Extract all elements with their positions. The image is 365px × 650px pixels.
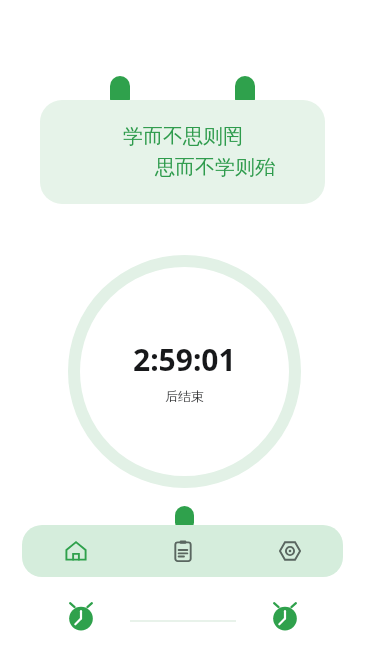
staticText: 思而不学则殆 xyxy=(155,155,275,180)
button[interactable]: Settings xyxy=(236,525,343,577)
staticText: 2:59:01 xyxy=(133,339,236,380)
button[interactable]: Alarm xyxy=(269,600,301,632)
button[interactable]: Tasks xyxy=(129,525,236,577)
staticText: 学而不思则罔 xyxy=(123,124,243,149)
button[interactable]: Alarm xyxy=(65,600,97,632)
staticText: 后结束 xyxy=(165,388,204,404)
button[interactable]: Home xyxy=(22,525,129,577)
button[interactable]: 学而不思则罔 xyxy=(40,100,325,204)
